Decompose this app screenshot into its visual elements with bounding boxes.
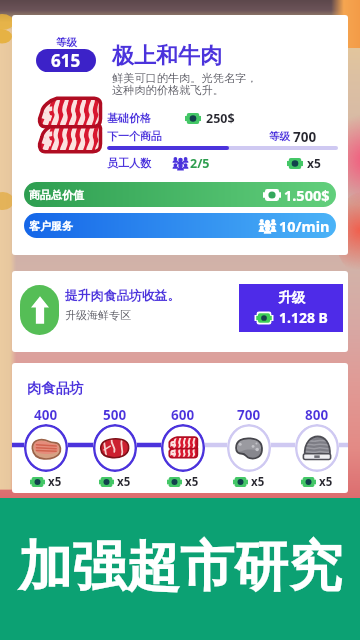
staticText: 基础价格: [107, 111, 151, 125]
button[interactable]: 615: [36, 49, 96, 72]
staticText: x5: [117, 474, 131, 490]
staticText: 升级: [278, 289, 305, 306]
button[interactable]: [24, 424, 68, 472]
staticText: 升级海鲜专区: [65, 308, 131, 322]
staticText: 10/min: [279, 216, 330, 236]
button[interactable]: Upgrade income: [12, 271, 348, 352]
staticText: 等级: [56, 36, 77, 49]
staticText: 400: [34, 406, 58, 424]
staticText: 极上和牛肉: [112, 42, 222, 70]
staticText: 商品总价值: [29, 188, 84, 202]
staticText: 鲜美可口的牛肉。光凭名字， 这种肉的价格就飞升。: [112, 71, 258, 98]
other: Upgrade income: [20, 285, 59, 335]
staticText: 800: [305, 406, 329, 424]
staticText: x5: [307, 155, 321, 171]
staticText: 1.128 B: [279, 308, 328, 327]
staticText: 下一个商品: [107, 129, 162, 143]
staticText: 600: [171, 406, 195, 424]
staticText: 1.500$: [284, 185, 330, 205]
button[interactable]: [161, 424, 205, 472]
button[interactable]: [93, 424, 137, 472]
button[interactable]: 升级: [239, 284, 343, 332]
staticText: 700: [293, 128, 317, 144]
staticText: x5: [251, 474, 265, 490]
button[interactable]: [295, 424, 339, 472]
staticText: x5: [185, 474, 199, 490]
staticText: x5: [48, 474, 62, 490]
staticText: 肉食品坊: [27, 379, 84, 397]
staticText: 2/5: [190, 155, 210, 172]
button[interactable]: 商品总价值: [24, 182, 336, 207]
staticText: 客户服务: [29, 219, 73, 233]
staticText: 615: [51, 49, 81, 72]
staticText: 700: [237, 406, 261, 424]
staticText: x5: [319, 474, 333, 490]
staticText: 等级: [269, 130, 290, 143]
staticText: 250$: [206, 110, 235, 126]
button[interactable]: 加强超市研究: [0, 498, 360, 640]
staticText: 员工人数: [107, 156, 151, 170]
button[interactable]: 客户服务: [24, 213, 336, 238]
staticText: 提升肉食品坊收益。: [65, 288, 181, 304]
staticText: 500: [103, 406, 127, 424]
button[interactable]: [227, 424, 271, 472]
staticText: 加强超市研究: [18, 533, 342, 601]
